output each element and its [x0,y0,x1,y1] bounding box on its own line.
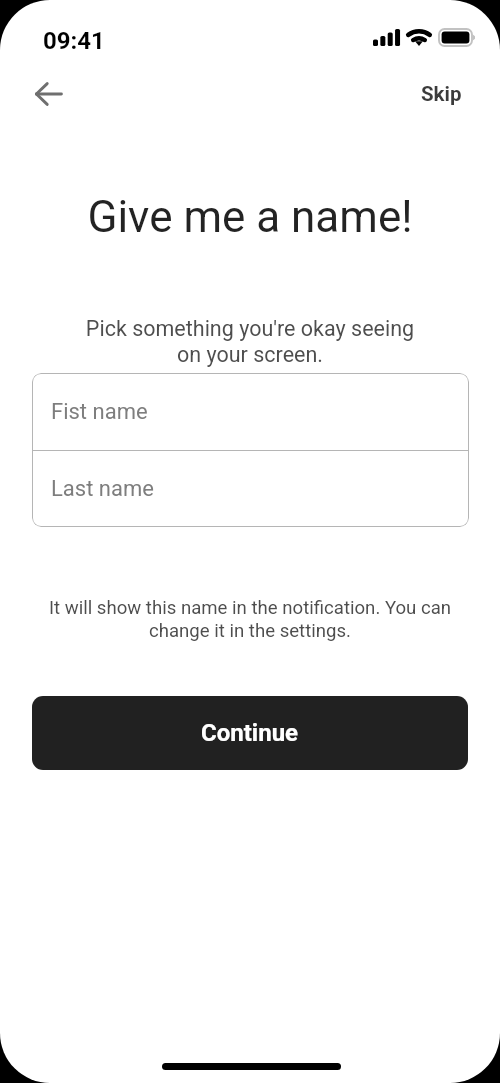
staticText: It will show this name in the notificati… [0,597,500,641]
button[interactable]: Back [22,68,74,120]
button[interactable]: Skip [408,72,474,116]
staticText: 09:41 [43,27,105,55]
staticText: Continue [201,719,299,747]
button[interactable]: Fist name [32,373,469,450]
staticText: Skip [421,82,462,106]
staticText: Pick something you're okay seeing on you… [0,316,500,367]
staticText: Fist name [51,399,148,425]
button[interactable]: Continue [32,696,468,770]
staticText: Last name [51,476,154,502]
button[interactable]: Last name [32,451,469,527]
staticText: Give me a name! [0,191,500,243]
